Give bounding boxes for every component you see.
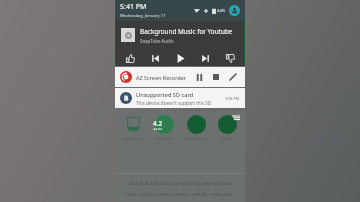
staticText: ★★★★ <box>153 128 163 131</box>
button[interactable]: Unsupported SD card <box>115 88 245 108</box>
staticText: 4.2 <box>153 119 163 128</box>
staticText: 35,891 ★ <box>156 136 173 141</box>
button[interactable]: Next <box>197 50 213 66</box>
button[interactable]: Stop <box>209 70 223 84</box>
staticText: Similar <box>221 136 234 141</box>
staticText: AZ Screen Recorder <box>136 74 187 81</box>
button[interactable]: Pause <box>192 70 206 84</box>
staticText: Wednesday, January 11 <box>120 13 166 19</box>
staticText: Downloads <box>123 136 143 141</box>
button[interactable]: AZ Screen Recorder <box>115 67 245 87</box>
staticText: 1 <box>128 120 132 129</box>
button[interactable]: User account <box>229 5 240 16</box>
button[interactable]: Previous <box>147 50 163 66</box>
button[interactable]: Downloads <box>119 115 147 141</box>
staticText: This device doesn't support this SD card… <box>136 100 225 106</box>
button[interactable]: Menu <box>231 113 241 123</box>
staticText: Background Music for Youtube Video.. <box>140 27 240 36</box>
button[interactable]: Productivity <box>182 115 210 141</box>
button[interactable]: Thumbs up <box>122 50 138 66</box>
button[interactable]: Similar <box>213 115 241 141</box>
staticText: Productivity <box>185 136 207 141</box>
staticText: 44% <box>217 8 226 14</box>
staticText: quick & simple note editing experience <box>129 179 231 187</box>
staticText: with write notes, memo, email, message <box>127 190 233 198</box>
button[interactable]: Edit <box>226 70 240 84</box>
button[interactable]: Background Music for Youtube Video.. <box>116 21 244 66</box>
button[interactable]: Thumbs down <box>222 50 238 66</box>
staticText: 3:08 PM <box>225 96 240 101</box>
staticText: 5:41 PM <box>120 2 147 12</box>
button[interactable]: Play <box>172 50 188 66</box>
staticText: Unsupported SD card <box>136 91 194 99</box>
staticText: SnapTube Audio <box>140 38 174 44</box>
button[interactable]: 35,891 ★ <box>150 115 178 141</box>
